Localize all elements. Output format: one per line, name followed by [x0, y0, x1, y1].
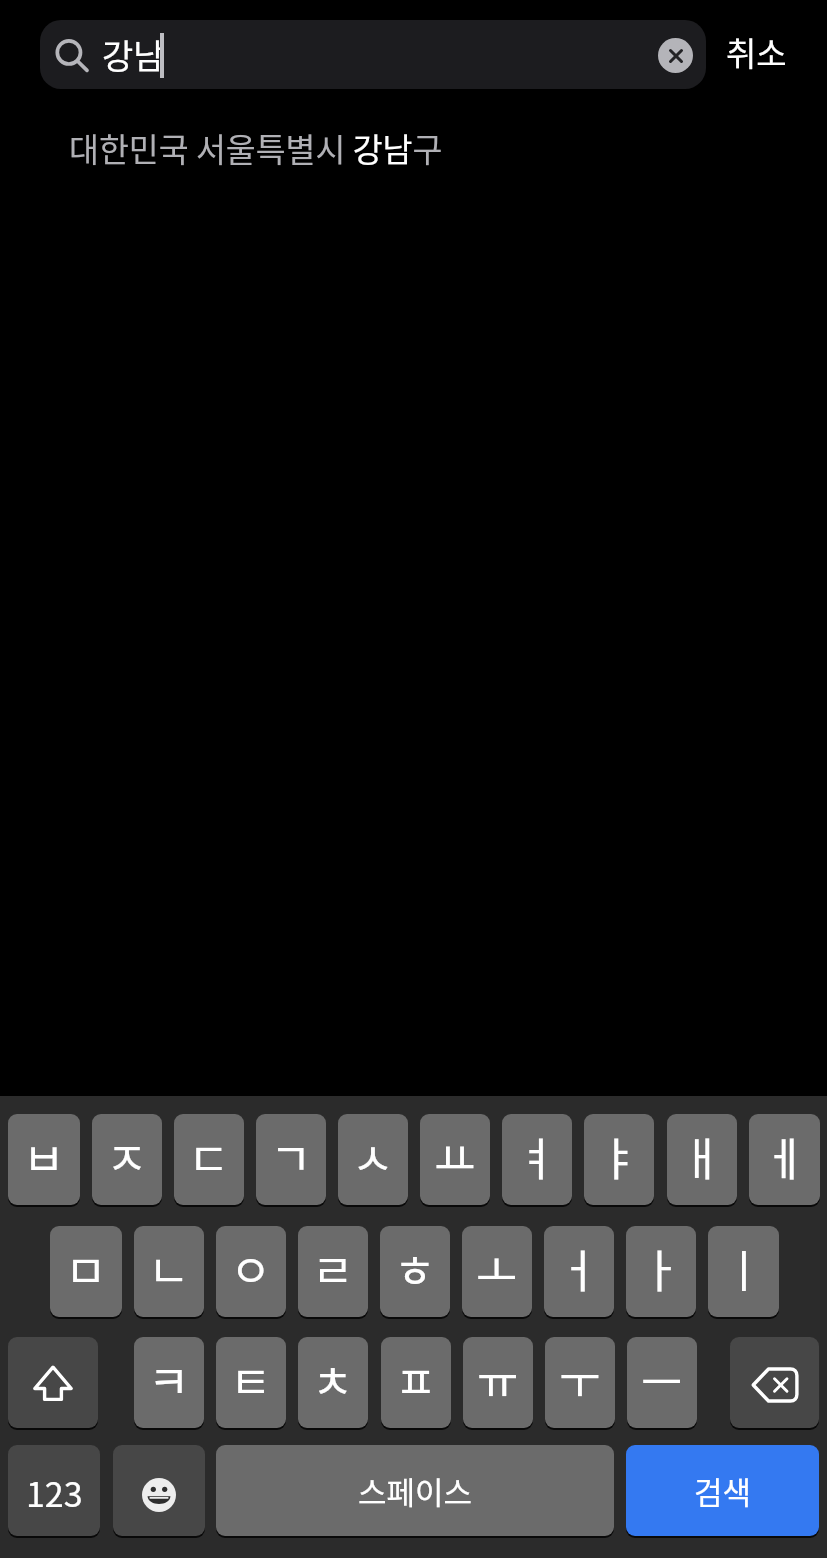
staticText: ㅠ — [477, 1347, 519, 1412]
staticText: ㅍ — [395, 1347, 437, 1412]
staticText: 123 — [26, 1468, 83, 1517]
button[interactable]: 대한민국 서울특별시 강남구 — [0, 110, 827, 190]
button[interactable]: ㅡ — [627, 1337, 697, 1428]
staticText: ㅕ — [516, 1124, 558, 1189]
staticText: ㅇ — [230, 1236, 272, 1301]
staticText: ㅌ — [230, 1347, 272, 1412]
button[interactable]: ㅠ — [463, 1337, 533, 1428]
staticText: ㅛ — [434, 1124, 476, 1189]
button[interactable]: ㄱ — [256, 1114, 326, 1205]
button[interactable]: ㅋ — [134, 1337, 204, 1428]
staticText: ㅗ — [476, 1236, 518, 1301]
button[interactable]: ㅂ — [8, 1114, 80, 1205]
staticText: 강남 — [102, 30, 165, 79]
button[interactable]: Clear search text — [658, 38, 693, 73]
button[interactable]: ㅏ — [626, 1226, 696, 1317]
button[interactable]: 스페이스 — [216, 1445, 614, 1536]
staticText: ㅜ — [559, 1347, 601, 1412]
staticText: ㅑ — [598, 1124, 640, 1189]
staticText: ㄴ — [148, 1236, 190, 1301]
staticText: 검색 — [694, 1468, 752, 1513]
staticText: ㅈ — [106, 1124, 148, 1189]
staticText: ㅅ — [352, 1124, 394, 1189]
button[interactable]: ㅜ — [545, 1337, 615, 1428]
button[interactable]: ㄷ — [174, 1114, 244, 1205]
button[interactable]: Backspace — [730, 1337, 819, 1428]
staticText: ㅂ — [23, 1124, 65, 1189]
staticText: ㅓ — [558, 1236, 600, 1301]
button[interactable]: ㅑ — [584, 1114, 654, 1205]
staticText: ㄱ — [270, 1124, 312, 1189]
button[interactable]: ㅌ — [216, 1337, 286, 1428]
button[interactable]: ㅈ — [92, 1114, 162, 1205]
staticText: ㅎ — [394, 1236, 436, 1301]
button[interactable]: Shift — [8, 1337, 98, 1428]
staticText: ㅐ — [681, 1124, 723, 1189]
button[interactable]: ㄹ — [298, 1226, 368, 1317]
staticText: ㅣ — [723, 1236, 765, 1301]
staticText: 대한민국 서울특별시 강남구 — [69, 124, 443, 171]
button[interactable]: ㅕ — [502, 1114, 572, 1205]
staticText: ㅔ — [764, 1124, 806, 1189]
button[interactable]: ㅎ — [380, 1226, 450, 1317]
button[interactable]: ㅁ — [50, 1226, 122, 1317]
staticText: ㅡ — [641, 1347, 683, 1412]
button[interactable]: ㅛ — [420, 1114, 490, 1205]
staticText: ㅏ — [640, 1236, 682, 1301]
button[interactable]: ㅊ — [298, 1337, 368, 1428]
staticText: ㅋ — [148, 1347, 190, 1412]
button[interactable]: ㅣ — [708, 1226, 779, 1317]
button[interactable]: ㅇ — [216, 1226, 286, 1317]
button[interactable]: ㅐ — [667, 1114, 737, 1205]
button[interactable]: ㅗ — [462, 1226, 532, 1317]
staticText: ㄷ — [188, 1124, 230, 1189]
staticText: 취소 — [726, 28, 787, 76]
button[interactable] — [40, 20, 706, 89]
button[interactable]: 검색 — [626, 1445, 819, 1536]
button[interactable]: Emoji keyboard — [113, 1445, 205, 1536]
button[interactable]: ㅓ — [544, 1226, 614, 1317]
staticText: 스페이스 — [358, 1468, 473, 1513]
button[interactable]: ㄴ — [134, 1226, 204, 1317]
button[interactable]: ㅍ — [381, 1337, 451, 1428]
button[interactable]: 123 — [8, 1445, 100, 1536]
staticText: ㅊ — [312, 1347, 354, 1412]
button[interactable]: ㅔ — [749, 1114, 820, 1205]
staticText: ㄹ — [312, 1236, 354, 1301]
staticText: ㅁ — [65, 1236, 107, 1301]
button[interactable]: 취소 — [714, 20, 799, 89]
button[interactable]: ㅅ — [338, 1114, 408, 1205]
